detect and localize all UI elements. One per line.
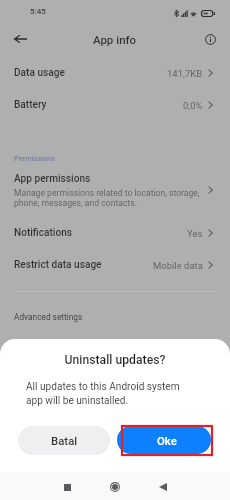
staticText: 141,7KB [167, 68, 203, 79]
button[interactable]: Data usage [0, 58, 230, 88]
staticText: App permissions [14, 173, 91, 185]
staticText: Data usage [14, 67, 167, 79]
button[interactable]: App info details [200, 29, 220, 49]
staticText: Manage permissions related to location, … [14, 188, 200, 208]
staticText: All updates to this Android system [26, 381, 180, 393]
staticText: App info [93, 33, 137, 46]
button[interactable]: Back [152, 476, 174, 498]
staticText: Permissions [14, 154, 55, 163]
staticText: Mobile data [153, 260, 203, 271]
button[interactable]: Restrict data usage [0, 250, 230, 280]
button[interactable]: Oke [117, 426, 211, 454]
button[interactable]: Notifications [0, 218, 230, 248]
staticText: app will be uninstalled. [26, 395, 129, 407]
button[interactable]: App permissions [0, 167, 230, 213]
button[interactable]: Recent apps [56, 476, 78, 498]
staticText: Batal [51, 434, 78, 447]
staticText: Yes [187, 228, 203, 239]
staticText: Notifications [14, 227, 187, 239]
button[interactable]: Back [9, 28, 31, 50]
staticText: Advanced settings [14, 312, 83, 322]
staticText: Battery [14, 99, 183, 111]
staticText: 5:45 [30, 7, 46, 16]
staticText: Oke [157, 434, 177, 447]
button[interactable]: Batal [18, 426, 110, 455]
staticText: Restrict data usage [14, 259, 153, 271]
staticText: Uninstall updates? [0, 353, 230, 367]
button[interactable]: Battery [0, 90, 230, 120]
button[interactable]: Home [104, 476, 126, 498]
staticText: 0,0% [183, 100, 203, 111]
